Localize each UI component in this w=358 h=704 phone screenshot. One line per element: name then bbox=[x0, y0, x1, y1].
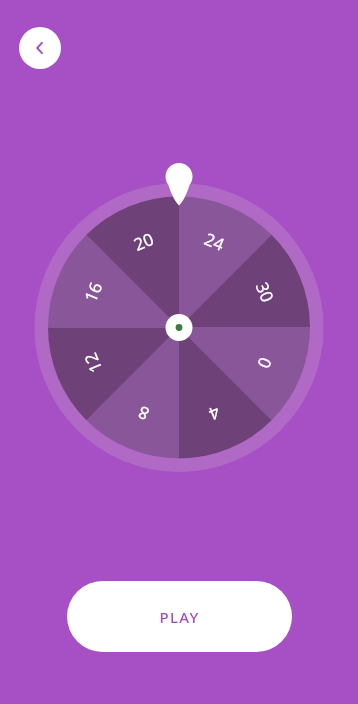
button[interactable]: PLAY bbox=[67, 581, 292, 652]
button[interactable]: Back bbox=[19, 27, 61, 69]
staticText: PLAY bbox=[159, 607, 200, 627]
